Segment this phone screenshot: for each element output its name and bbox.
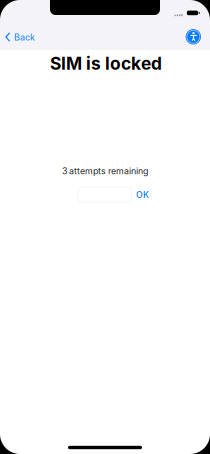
button[interactable]: Accessibility bbox=[182, 26, 204, 48]
staticText: SIM is locked bbox=[50, 53, 162, 74]
staticText: OK bbox=[136, 189, 149, 200]
button[interactable]: OK bbox=[132, 188, 152, 202]
staticText: 3 attempts remaining bbox=[62, 166, 148, 176]
staticText: Back bbox=[14, 32, 35, 43]
button[interactable]: Back bbox=[0, 22, 40, 52]
